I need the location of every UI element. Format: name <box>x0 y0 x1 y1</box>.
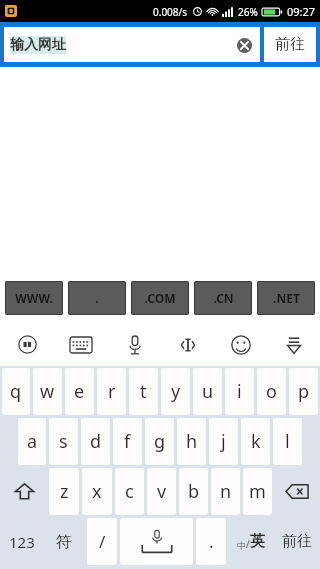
button[interactable]: . <box>68 281 126 315</box>
staticText: r <box>108 379 116 404</box>
button[interactable]: 前往 <box>264 27 316 62</box>
staticText: / <box>99 530 106 553</box>
button[interactable]: Clear <box>233 34 255 56</box>
staticText: . <box>95 290 99 306</box>
staticText: p <box>298 379 310 404</box>
staticText: z <box>60 479 69 504</box>
button[interactable]: y <box>161 368 190 415</box>
button[interactable]: n <box>211 468 240 515</box>
staticText: j <box>221 429 226 454</box>
button[interactable]: w <box>33 368 62 415</box>
staticText: n <box>220 479 232 504</box>
button[interactable]: j <box>209 418 238 465</box>
button[interactable]: d <box>81 418 110 465</box>
staticText: 前往 <box>275 35 305 54</box>
staticText: 输入网址 <box>10 36 66 54</box>
button[interactable]: p <box>289 368 318 415</box>
button[interactable]: u <box>193 368 222 415</box>
button[interactable]: Keyboard layout <box>54 323 108 366</box>
button[interactable]: . <box>196 518 226 565</box>
button[interactable]: t <box>129 368 158 415</box>
button[interactable]: Emoji <box>214 323 267 366</box>
button[interactable]: .NET <box>257 281 315 315</box>
button[interactable]: WWW. <box>5 281 63 315</box>
staticText: o <box>266 379 277 404</box>
button[interactable]: g <box>145 418 174 465</box>
button[interactable]: Voice input <box>108 323 161 366</box>
button[interactable]: Sogou input <box>0 323 54 366</box>
button[interactable]: Move cursor <box>161 323 214 366</box>
button[interactable]: o <box>257 368 286 415</box>
staticText: 中 <box>237 540 246 551</box>
button[interactable]: k <box>241 418 270 465</box>
button[interactable]: / <box>87 518 117 565</box>
button[interactable]: f <box>113 418 142 465</box>
button[interactable]: .COM <box>131 281 189 315</box>
staticText: 0.008/s <box>153 5 188 19</box>
staticText: .NET <box>273 290 300 306</box>
staticText: 前往 <box>282 532 312 551</box>
staticText: . <box>209 530 214 553</box>
button[interactable]: b <box>179 468 208 515</box>
button[interactable]: a <box>18 418 46 465</box>
button[interactable]: l <box>273 418 302 465</box>
staticText: s <box>59 429 68 454</box>
button[interactable]: 123 <box>2 518 41 565</box>
staticText: k <box>251 429 261 454</box>
staticText: h <box>186 429 198 454</box>
button[interactable]: v <box>147 468 176 515</box>
button[interactable]: x <box>82 468 112 515</box>
staticText: t <box>140 379 147 404</box>
button[interactable]: z <box>49 468 79 515</box>
staticText: 123 <box>9 532 35 552</box>
staticText: / <box>246 537 250 551</box>
staticText: 26% <box>238 5 258 19</box>
staticText: y <box>171 379 181 404</box>
button[interactable]: 中 <box>229 518 272 565</box>
staticText: l <box>285 429 290 454</box>
button[interactable]: Backspace <box>275 468 318 515</box>
staticText: .COM <box>144 290 176 306</box>
button[interactable]: c <box>115 468 144 515</box>
button[interactable]: s <box>49 418 78 465</box>
button[interactable]: Space <box>120 518 193 565</box>
button[interactable]: Hide keyboard <box>267 323 320 366</box>
staticText: v <box>157 479 167 504</box>
staticText: WWW. <box>15 290 53 306</box>
button[interactable]: r <box>97 368 126 415</box>
staticText: m <box>249 479 266 504</box>
button[interactable]: q <box>2 368 30 415</box>
staticText: c <box>125 479 134 504</box>
staticText: .CN <box>213 290 234 306</box>
staticText: a <box>27 429 38 454</box>
button[interactable]: 输入网址 <box>4 27 260 62</box>
staticText: 英 <box>250 532 265 551</box>
button[interactable]: Shift <box>2 468 46 515</box>
button[interactable]: h <box>177 418 206 465</box>
staticText: w <box>40 379 55 404</box>
button[interactable]: 前往 <box>275 518 318 565</box>
staticText: 符 <box>56 532 72 552</box>
staticText: d <box>90 429 102 454</box>
staticText: x <box>92 479 102 504</box>
staticText: e <box>74 379 85 404</box>
staticText: i <box>237 379 242 404</box>
button[interactable]: .CN <box>194 281 252 315</box>
staticText: b <box>188 479 200 504</box>
staticText: 09:27 <box>287 4 316 19</box>
button[interactable]: i <box>225 368 254 415</box>
button[interactable]: 符 <box>44 518 84 565</box>
staticText: f <box>124 429 131 454</box>
staticText: g <box>154 429 166 454</box>
staticText: u <box>202 379 214 404</box>
button[interactable]: e <box>65 368 94 415</box>
staticText: q <box>10 379 22 404</box>
button[interactable]: m <box>243 468 272 515</box>
